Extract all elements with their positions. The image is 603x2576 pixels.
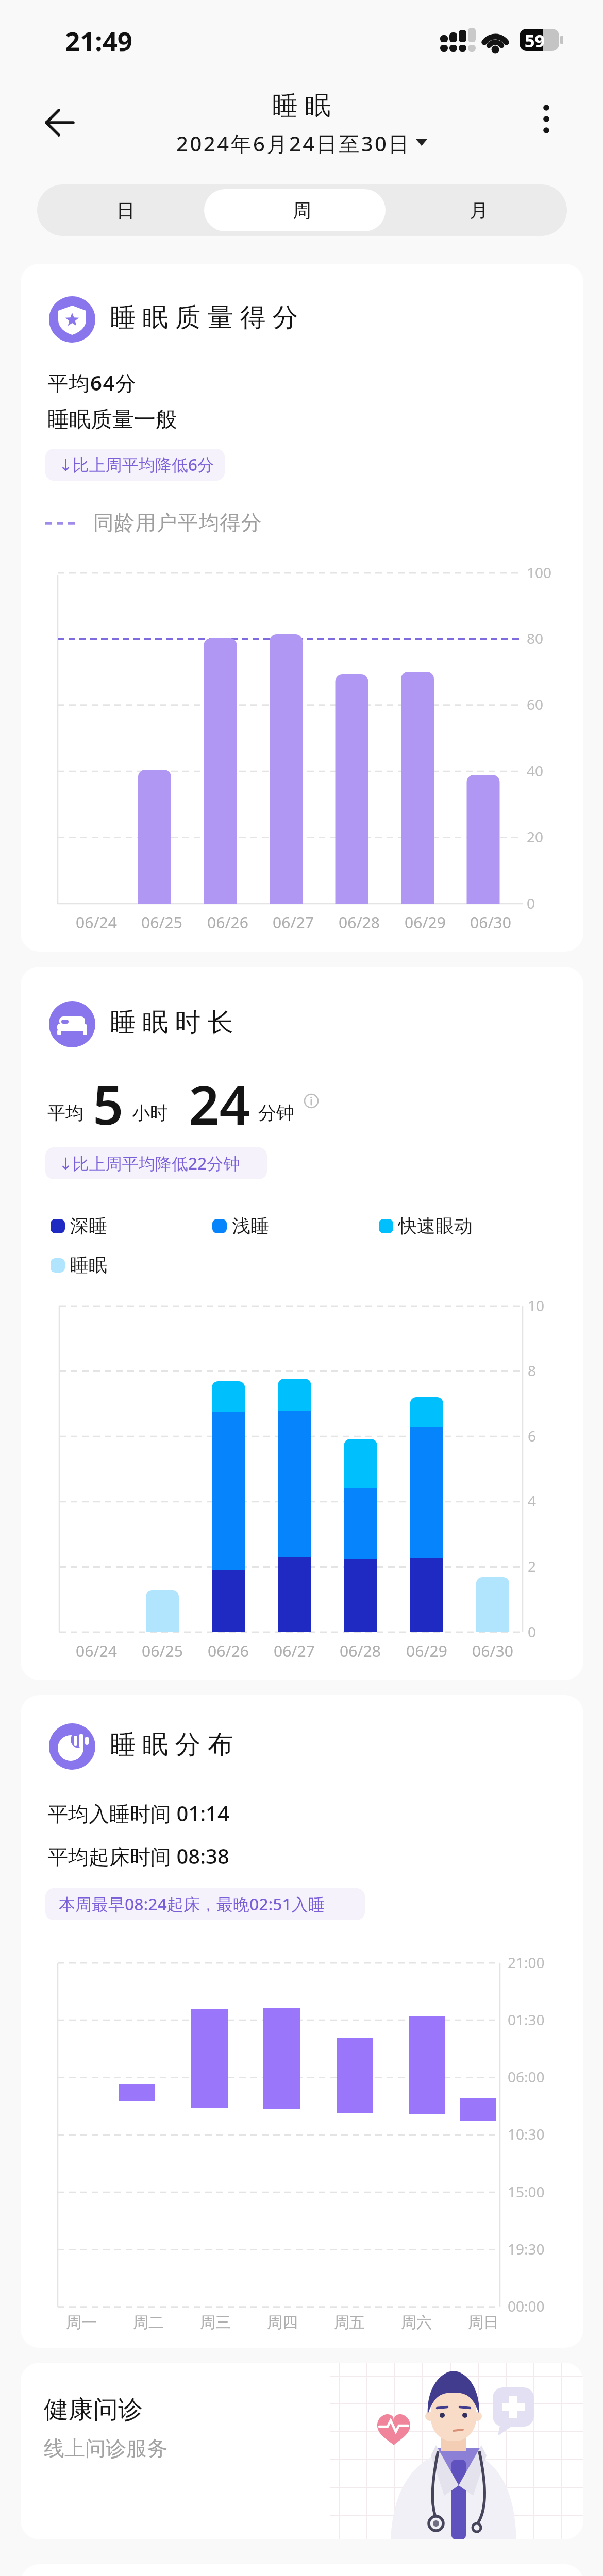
- staticText: 06/30: [472, 1640, 513, 1662]
- staticText: 4: [528, 1491, 537, 1511]
- staticText: 0: [528, 1622, 537, 1641]
- button[interactable]: 周: [214, 184, 390, 236]
- staticText: 周二: [133, 2313, 164, 2332]
- staticText: 睡眠质量得分: [107, 301, 301, 334]
- staticText: 周三: [200, 2313, 231, 2332]
- staticText: 24: [189, 1067, 250, 1129]
- staticText: 平均: [47, 1101, 83, 1124]
- button[interactable]: 日: [37, 184, 214, 236]
- staticText: 2024年6月24日至30日: [176, 129, 411, 156]
- staticText: 10: [528, 1296, 545, 1315]
- staticText: 06/28: [340, 1640, 381, 1662]
- staticText: 8: [528, 1361, 537, 1380]
- staticText: 2: [528, 1556, 537, 1576]
- staticText: 15:00: [508, 2182, 545, 2201]
- staticText: 60: [527, 694, 544, 714]
- staticText: 06/25: [141, 912, 182, 933]
- staticText: 睡眠质量一般: [47, 406, 177, 433]
- staticText: 周六: [401, 2313, 432, 2332]
- staticText: 0: [527, 893, 535, 913]
- staticText: 40: [527, 761, 544, 781]
- staticText: 线上问诊服务: [44, 2435, 167, 2461]
- button[interactable]: [304, 1094, 319, 1108]
- staticText: 周五: [334, 2313, 365, 2332]
- staticText: 同龄用户平均得分: [93, 510, 262, 535]
- staticText: 深睡: [70, 1214, 107, 1238]
- staticText: 周: [293, 199, 311, 222]
- staticText: 06/30: [470, 912, 511, 933]
- staticText: 快速眼动: [398, 1214, 473, 1238]
- staticText: 06/25: [142, 1640, 183, 1662]
- staticText: 周四: [267, 2313, 298, 2332]
- staticText: 10:30: [508, 2124, 545, 2144]
- staticText: 00:00: [508, 2296, 545, 2316]
- button[interactable]: [40, 106, 77, 139]
- staticText: 21:49: [65, 23, 133, 58]
- staticText: 21:00: [508, 1953, 545, 1972]
- staticText: 100: [527, 563, 552, 582]
- button[interactable]: 月: [390, 184, 567, 236]
- staticText: 分钟: [258, 1101, 294, 1124]
- staticText: 睡眠分布: [107, 1728, 237, 1761]
- staticText: 5: [93, 1067, 124, 1129]
- staticText: 06/28: [339, 912, 380, 933]
- staticText: 59: [525, 29, 545, 51]
- staticText: 睡眠: [70, 1253, 107, 1277]
- staticText: 06/26: [208, 1640, 249, 1662]
- staticText: ↓比上周平均降低22分钟: [59, 1152, 240, 1175]
- staticText: 睡眠时长: [107, 1006, 237, 1039]
- staticText: 周日: [468, 2313, 499, 2332]
- staticText: ↓比上周平均降低6分: [59, 453, 214, 476]
- button[interactable]: 健康问诊: [21, 2363, 583, 2539]
- staticText: 平均入睡时间 01:14: [47, 1799, 229, 1827]
- staticText: 6: [528, 1426, 537, 1446]
- staticText: 06/24: [76, 1640, 117, 1662]
- staticText: 06/27: [273, 912, 314, 933]
- staticText: 06/24: [76, 912, 117, 933]
- staticText: 19:30: [508, 2239, 545, 2259]
- staticText: 06/27: [274, 1640, 315, 1662]
- staticText: 月: [470, 199, 488, 222]
- staticText: 日: [116, 199, 135, 222]
- button[interactable]: [531, 103, 562, 136]
- staticText: 06:00: [508, 2067, 545, 2087]
- staticText: 健康问诊: [44, 2394, 143, 2425]
- staticText: 平均64分: [47, 368, 137, 397]
- staticText: 06/29: [405, 912, 446, 933]
- staticText: 浅睡: [232, 1214, 269, 1238]
- staticText: 周一: [66, 2313, 97, 2332]
- staticText: 本周最早08:24起床，最晚02:51入睡: [59, 1893, 325, 1916]
- staticText: 小时: [132, 1101, 168, 1124]
- staticText: 20: [527, 827, 544, 846]
- staticText: 06/29: [406, 1640, 447, 1662]
- button[interactable]: 2024年6月24日至30日: [147, 129, 456, 156]
- staticText: 80: [527, 629, 544, 648]
- staticText: 睡眠: [269, 90, 334, 122]
- staticText: 06/26: [207, 912, 248, 933]
- staticText: 01:30: [508, 2010, 545, 2029]
- staticText: 平均起床时间 08:38: [47, 1842, 229, 1870]
